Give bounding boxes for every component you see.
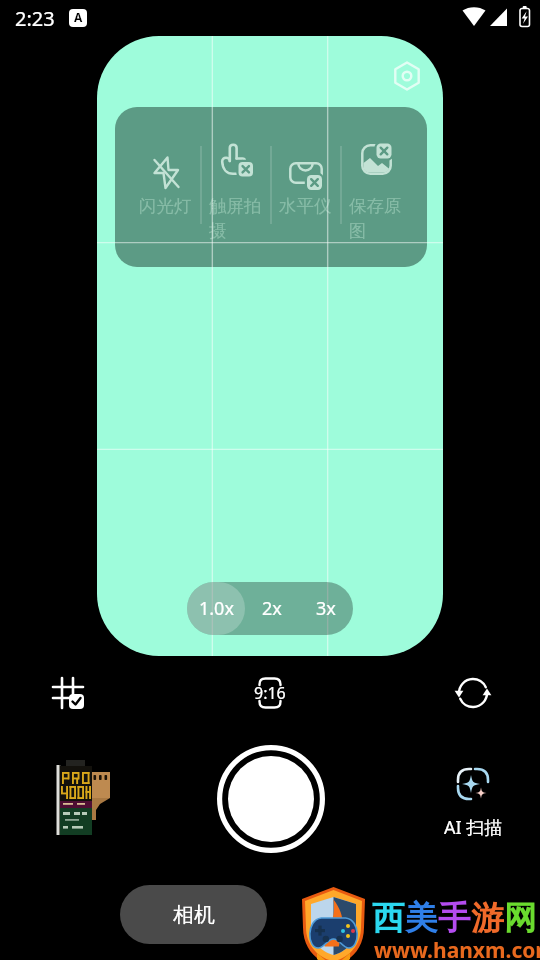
staticText: www.hanxm.com [374, 936, 540, 960]
staticText: 闪光灯 [139, 195, 193, 217]
staticText: 保存原图 [349, 195, 403, 242]
staticText: 相机 [173, 902, 215, 928]
staticText: 9:16 [254, 682, 286, 704]
button[interactable]: 相机 [120, 885, 267, 944]
button[interactable]: 保存原图 [341, 107, 411, 267]
staticText: 西 [372, 898, 405, 939]
staticText: 网 [504, 898, 537, 939]
button[interactable]: AI 扫描 [424, 766, 522, 840]
button[interactable]: 3x [299, 582, 353, 635]
button[interactable]: Grid lines on [46, 671, 90, 715]
staticText: 2:23 [15, 5, 55, 32]
button[interactable]: 1.0x [187, 582, 245, 635]
staticText: 美 [405, 898, 438, 939]
button[interactable]: Switch camera [451, 671, 495, 715]
button[interactable]: Camera settings [389, 58, 425, 94]
button[interactable]: 2x [245, 582, 299, 635]
staticText: AI 扫描 [444, 815, 503, 840]
button[interactable]: 触屏拍摄 [201, 107, 271, 267]
staticText: 1.0x [199, 596, 234, 621]
staticText: 触屏拍摄 [209, 195, 263, 242]
button[interactable]: Aspect ratio 9:16 [248, 671, 292, 715]
button[interactable]: 闪光灯 [131, 107, 201, 267]
button[interactable]: Shutter [217, 745, 325, 853]
staticText: 水平仪 [279, 195, 333, 217]
staticText: A [74, 9, 83, 25]
staticText: 手 [438, 898, 471, 939]
button[interactable]: 水平仪 [271, 107, 341, 267]
staticText: 2x [262, 596, 282, 621]
staticText: 3x [316, 596, 336, 621]
button[interactable]: Gallery [44, 758, 110, 836]
staticText: 游 [471, 898, 504, 939]
